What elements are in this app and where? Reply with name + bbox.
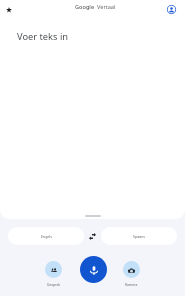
button[interactable]: Swap languages [84,228,100,244]
staticText: Spaans [133,234,145,239]
staticText: Google [75,3,95,11]
staticText: Voer teks in [17,30,69,43]
button[interactable]: Saved translations [0,1,18,19]
staticText: Vertaal [97,3,116,11]
button[interactable]: Speak [80,256,107,283]
button[interactable]: Account [163,1,180,18]
button[interactable]: Gesprek [45,261,62,287]
staticText: Kamera [125,282,138,287]
button[interactable]: Kamera [123,261,140,287]
button[interactable]: Spaans [101,227,177,245]
button[interactable]: Engels [8,227,84,245]
staticText: Engels [41,234,52,239]
staticText: Gesprek [47,282,61,287]
